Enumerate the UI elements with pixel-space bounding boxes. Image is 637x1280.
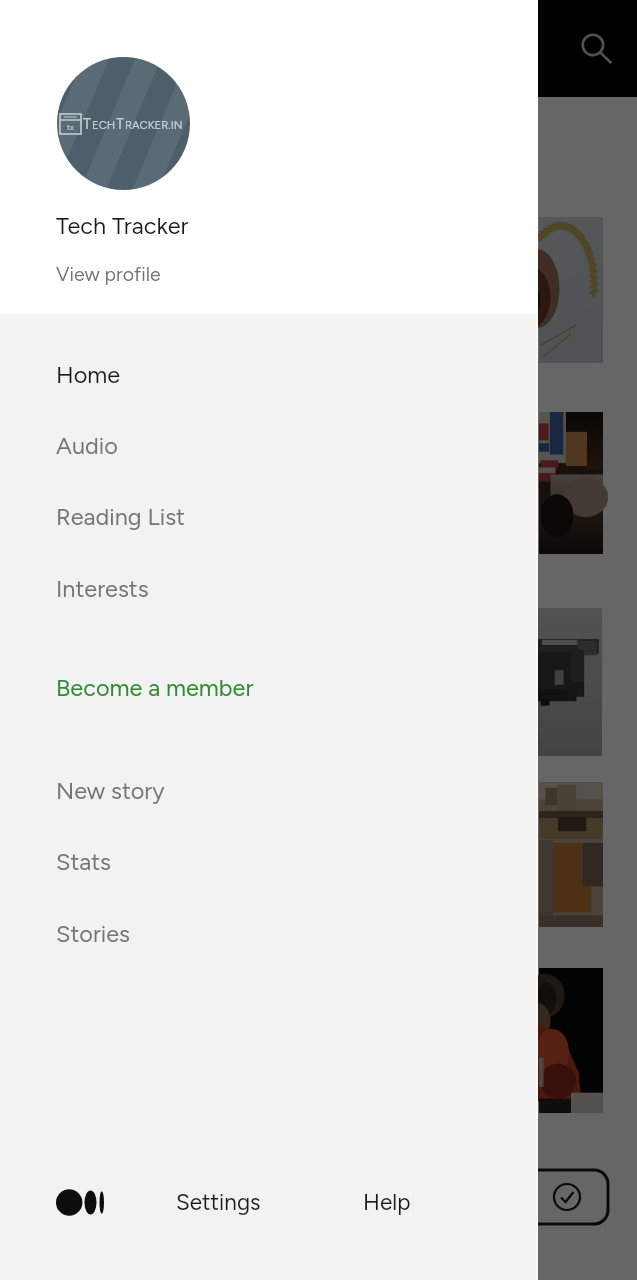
button[interactable]: Settings: [176, 1189, 261, 1216]
button[interactable]: Profile picture: [57, 57, 190, 190]
button[interactable]: Mark as read: [330, 1169, 609, 1225]
staticText: Become a member: [56, 674, 254, 702]
button[interactable]: Stats: [0, 833, 538, 891]
staticText: RACKER.IN: [125, 118, 183, 132]
staticText: Home: [56, 361, 121, 389]
staticText: Stories: [56, 920, 131, 948]
button[interactable]: Help: [363, 1189, 411, 1216]
button[interactable]: Stories: [0, 905, 538, 963]
button[interactable]: View profile: [56, 262, 161, 285]
button[interactable]: Home: [0, 346, 538, 404]
staticText: Interests: [56, 575, 149, 603]
staticText: T: [116, 115, 125, 132]
button[interactable]: Audio: [0, 417, 538, 475]
staticText: Help: [363, 1189, 411, 1216]
button[interactable]: Interests: [0, 560, 538, 618]
staticText: Reading List: [56, 503, 185, 531]
staticText: Audio: [56, 432, 118, 460]
staticText: tx: [67, 122, 74, 132]
staticText: Stats: [56, 848, 112, 876]
button[interactable]: Medium home: [56, 1189, 104, 1216]
staticText: New story: [56, 777, 165, 805]
staticText: Settings: [176, 1189, 261, 1216]
staticText: T: [83, 115, 92, 132]
staticText: View profile: [56, 262, 161, 285]
button[interactable]: Become a member: [0, 659, 538, 717]
button[interactable]: Reading List: [0, 488, 538, 546]
button[interactable]: New story: [0, 762, 538, 820]
staticText: ECH: [92, 118, 116, 132]
staticText: Tech Tracker: [56, 212, 189, 240]
button[interactable]: Search: [571, 23, 623, 75]
